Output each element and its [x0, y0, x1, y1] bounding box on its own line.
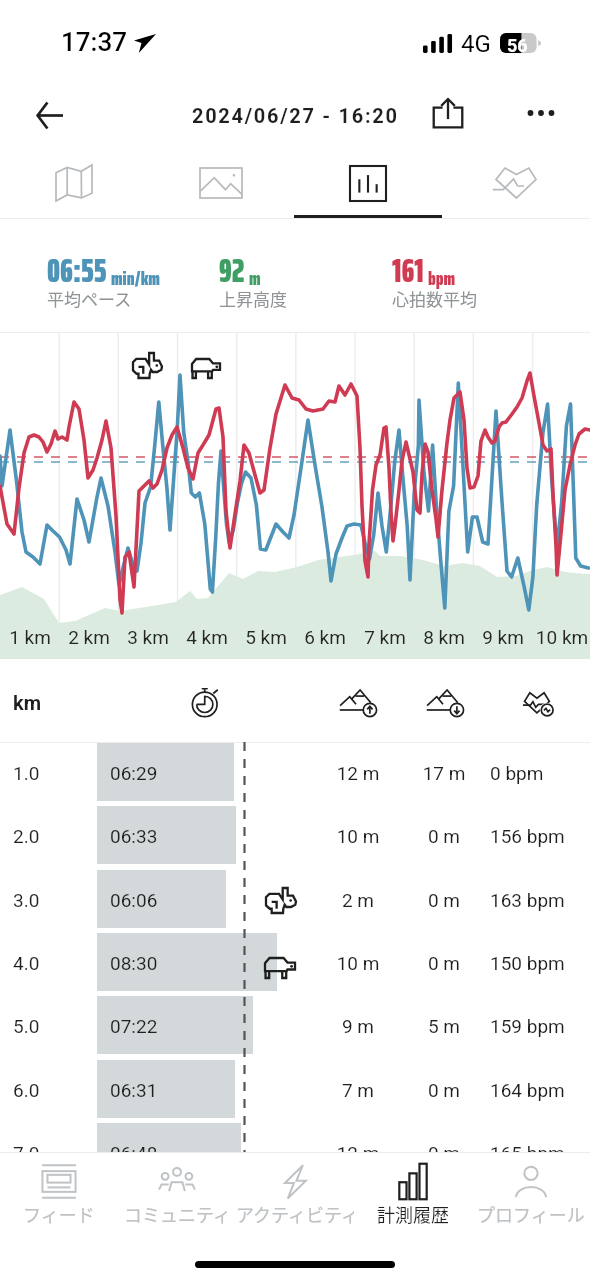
staticText: 164 bpm — [490, 1079, 565, 1101]
staticText: 0 bpm — [490, 762, 544, 784]
staticText: 7 km — [345, 626, 425, 648]
staticText: 92 — [219, 245, 245, 297]
staticText: 06:33 — [110, 825, 158, 847]
staticText: 12 m — [308, 762, 408, 784]
staticText: 161 — [392, 245, 424, 297]
staticText: 163 bpm — [490, 889, 565, 911]
staticText: 9 m — [308, 1015, 408, 1037]
staticText: 17 m — [394, 762, 494, 784]
staticText: bpm — [428, 262, 456, 293]
staticText: 2.0 — [13, 825, 40, 847]
staticText: 0 m — [394, 889, 494, 911]
staticText: フィード — [23, 1201, 95, 1227]
staticText: 4.0 — [13, 952, 40, 974]
staticText: 計測履歴 — [377, 1201, 449, 1227]
staticText: 07:22 — [110, 1015, 158, 1037]
button[interactable]: プロフィール — [472, 1153, 590, 1246]
staticText: 6 km — [285, 626, 365, 648]
button[interactable]: アクティビティ — [236, 1153, 354, 1246]
staticText: 7 m — [308, 1079, 408, 1101]
staticText: 2024/06/27 - 16:20 — [192, 104, 399, 127]
staticText: コミュニティ — [124, 1201, 231, 1227]
staticText: 9 km — [463, 626, 543, 648]
button[interactable]: Share — [420, 85, 476, 141]
staticText: 2 m — [308, 889, 408, 911]
staticText: 159 bpm — [490, 1015, 565, 1037]
staticText: 06:55 — [47, 245, 107, 297]
staticText: 4G — [461, 30, 491, 58]
staticText: 0 m — [394, 825, 494, 847]
staticText: 0 m — [394, 952, 494, 974]
staticText: 10 m — [308, 825, 408, 847]
button[interactable]: 5.0 — [0, 996, 590, 1059]
staticText: 12 m — [308, 1142, 408, 1152]
button[interactable]: Charts — [294, 146, 442, 218]
staticText: 1.0 — [13, 762, 40, 784]
staticText: 上昇高度 — [219, 286, 287, 311]
staticText: 56 — [507, 35, 528, 55]
staticText: 7.0 — [13, 1142, 40, 1152]
button[interactable]: Heart rate — [442, 146, 590, 218]
button[interactable]: 1.0 — [0, 743, 590, 806]
staticText: プロフィール — [477, 1201, 585, 1227]
staticText: 3 km — [108, 626, 188, 648]
staticText: 150 bpm — [490, 952, 565, 974]
staticText: 5.0 — [13, 1015, 40, 1037]
staticText: 平均ペース — [47, 286, 132, 311]
staticText: 06:06 — [110, 889, 158, 911]
staticText: 6.0 — [13, 1079, 40, 1101]
staticText: 06:48 — [110, 1142, 158, 1152]
staticText: m — [249, 262, 261, 293]
button[interactable]: 7.0 — [0, 1123, 590, 1152]
button[interactable]: More options — [513, 85, 569, 141]
button[interactable]: Map — [0, 146, 147, 218]
staticText: 0 m — [394, 1079, 494, 1101]
staticText: 3.0 — [13, 889, 40, 911]
staticText: 17:37 — [61, 27, 127, 57]
staticText: 8 km — [404, 626, 484, 648]
staticText: 156 bpm — [490, 825, 565, 847]
staticText: 08:30 — [110, 952, 158, 974]
staticText: 0 m — [394, 1142, 494, 1152]
staticText: 5 m — [394, 1015, 494, 1037]
staticText: 10 m — [308, 952, 408, 974]
button[interactable]: コミュニティ — [118, 1153, 236, 1246]
button[interactable]: 6.0 — [0, 1060, 590, 1123]
staticText: 5 km — [226, 626, 306, 648]
staticText: 心拍数平均 — [392, 286, 477, 311]
staticText: km — [13, 691, 42, 714]
button[interactable]: フィード — [0, 1153, 118, 1246]
staticText: アクティビティ — [236, 1201, 354, 1227]
staticText: 10 km — [522, 626, 590, 648]
staticText: 165 bpm — [490, 1142, 565, 1152]
button[interactable]: 4.0 — [0, 933, 590, 996]
staticText: 1 km — [0, 626, 70, 648]
staticText: min/km — [111, 262, 160, 293]
button[interactable]: 2.0 — [0, 806, 590, 869]
button[interactable]: 計測履歴 — [354, 1153, 472, 1246]
staticText: 4 km — [167, 626, 247, 648]
button[interactable]: Back — [20, 87, 76, 143]
staticText: 06:29 — [110, 762, 158, 784]
button[interactable]: Photos — [147, 146, 294, 218]
staticText: 06:31 — [110, 1079, 158, 1101]
staticText: 2 km — [49, 626, 129, 648]
button[interactable]: 3.0 — [0, 870, 590, 933]
